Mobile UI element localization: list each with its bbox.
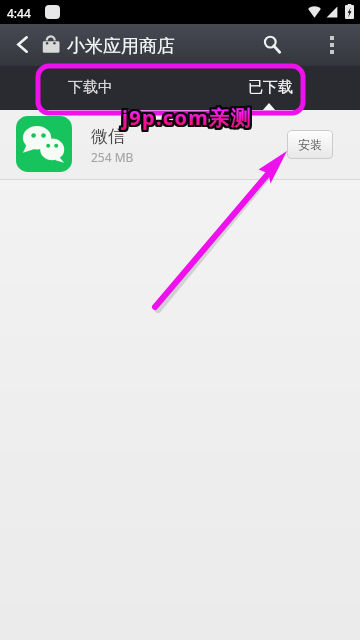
staticText: j9p.com亲测 xyxy=(122,102,252,129)
button[interactable]: 已下载 xyxy=(180,65,360,110)
staticText: j9p.com亲测 xyxy=(124,102,254,129)
staticText: j9p.com亲测 xyxy=(122,104,252,131)
button[interactable]: More options xyxy=(316,24,348,65)
staticText: j9p.com亲测 xyxy=(120,105,250,132)
button[interactable]: Back xyxy=(2,24,42,65)
button[interactable]: 微信 xyxy=(0,110,360,179)
staticText: j9p.com亲测 xyxy=(124,105,254,132)
staticText: j9p.com亲测 xyxy=(124,103,254,130)
staticText: 4:44 xyxy=(7,5,31,21)
staticText: j9p.com亲测 xyxy=(122,106,252,133)
staticText: 已下载 xyxy=(248,78,293,97)
button[interactable]: 下载中 xyxy=(0,65,180,110)
staticText: j9p.com亲测 xyxy=(123,102,253,129)
staticText: j9p.com亲测 xyxy=(124,106,254,133)
staticText: 微信 xyxy=(91,126,125,147)
staticText: 254 MB xyxy=(91,149,134,165)
staticText: j9p.com亲测 xyxy=(120,104,250,131)
staticText: j9p.com亲测 xyxy=(124,104,254,131)
staticText: 小米应用商店 xyxy=(67,35,175,58)
staticText: j9p.com亲测 xyxy=(121,106,251,133)
staticText: j9p.com亲测 xyxy=(120,106,250,133)
staticText: j9p.com亲测 xyxy=(123,106,253,133)
staticText: 安装 xyxy=(298,137,322,152)
staticText: j9p.com亲测 xyxy=(121,102,251,129)
staticText: j9p.com亲测 xyxy=(120,102,250,129)
button[interactable]: 安装 xyxy=(287,130,333,159)
staticText: 下载中 xyxy=(68,78,113,97)
button[interactable]: Search xyxy=(250,24,294,65)
staticText: j9p.com亲测 xyxy=(120,103,250,130)
